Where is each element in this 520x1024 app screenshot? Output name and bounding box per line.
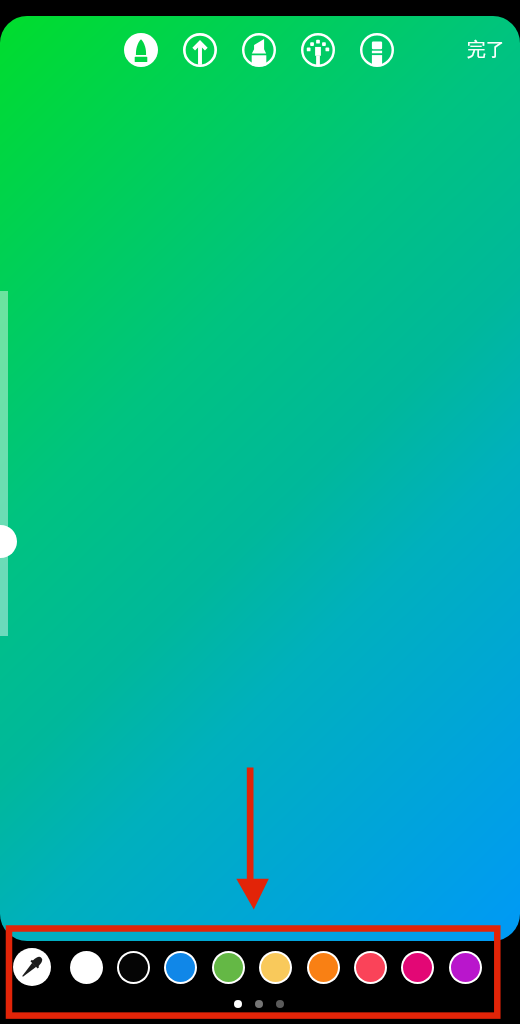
button[interactable]: Colour [212, 951, 245, 984]
staticText: 完了 [467, 38, 505, 62]
button[interactable]: Colour [259, 951, 292, 984]
button[interactable]: Colour [449, 951, 482, 984]
button[interactable]: Eyedropper [13, 948, 51, 986]
button[interactable]: Colour [307, 951, 340, 984]
button[interactable]: Pencil [296, 28, 340, 72]
button[interactable]: Marker [178, 28, 222, 72]
button[interactable]: Colour [164, 951, 197, 984]
button[interactable]: Highlighter [237, 28, 281, 72]
button[interactable]: Colour [70, 951, 103, 984]
button[interactable]: Colour [354, 951, 387, 984]
button[interactable]: 完了 [457, 27, 515, 73]
button[interactable]: Eraser [355, 28, 399, 72]
button[interactable]: Pen [119, 28, 163, 72]
button[interactable]: Colour [401, 951, 434, 984]
button[interactable]: Colour [117, 951, 150, 984]
